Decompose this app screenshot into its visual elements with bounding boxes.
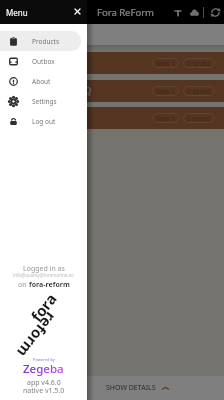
staticText: 0 saved <box>187 59 211 68</box>
staticText: on <box>18 280 29 290</box>
staticText <box>6 112 152 124</box>
staticText: About <box>32 77 51 86</box>
button[interactable]: Cloud status <box>187 5 201 19</box>
staticText: Outbox <box>32 57 55 66</box>
staticText: app v4.6.0 <box>27 378 61 388</box>
button[interactable]: SHOW DETAILS <box>0 376 224 400</box>
staticText: New 1 <box>156 114 175 123</box>
staticText: reform <box>13 308 61 362</box>
staticText: Settings <box>32 97 57 106</box>
button[interactable]: New 1 <box>0 52 224 74</box>
button[interactable]: 0 saved <box>183 58 215 68</box>
button[interactable]: Log out <box>0 111 81 131</box>
staticText: fora-reform <box>29 280 70 290</box>
button[interactable]: 0 saved <box>183 113 215 123</box>
staticText: Menu <box>6 7 28 18</box>
button[interactable]: Sync <box>208 5 222 19</box>
staticText <box>6 57 152 69</box>
staticText: 0 saved <box>187 114 211 123</box>
button[interactable]: About <box>0 71 81 91</box>
staticText: New 1 <box>156 87 175 96</box>
button[interactable]: Close menu <box>70 4 84 18</box>
staticText: Log out <box>32 117 56 126</box>
staticText: info@quality@foramarine.no <box>13 272 74 278</box>
staticText: Products <box>32 37 60 46</box>
button[interactable]: New 1 <box>152 58 179 68</box>
button[interactable]: New 1 <box>152 113 179 123</box>
button[interactable]: New 1 <box>0 107 224 129</box>
button[interactable]: New 1 <box>152 86 179 96</box>
button[interactable]: Outbox <box>0 51 81 71</box>
staticText: SHOW DETAILS <box>106 383 156 393</box>
staticText: New 1 <box>156 59 175 68</box>
staticText: Fora ReForm <box>97 6 154 19</box>
button[interactable]: 0 saved <box>183 86 215 96</box>
staticText: Zegeba <box>23 361 64 377</box>
button[interactable]: CERTIFICATION / RFQ <box>0 80 224 102</box>
button[interactable]: Text size <box>170 5 185 20</box>
button[interactable]: Products <box>0 31 81 51</box>
staticText: CERTIFICATION / RFQ <box>6 85 152 97</box>
staticText: fora <box>26 289 61 325</box>
staticText: Powered by <box>33 357 55 362</box>
staticText: 0 saved <box>187 87 211 96</box>
staticText: Logged in as <box>23 264 65 274</box>
button[interactable]: Settings <box>0 91 81 111</box>
staticText: native v1.5.0 <box>23 386 65 396</box>
